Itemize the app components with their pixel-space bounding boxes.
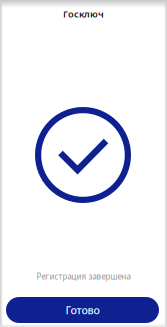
staticText: Госключ [63,8,104,20]
button[interactable]: Готово [6,297,159,323]
staticText: Готово [65,303,99,317]
staticText: Регистрация завершена [36,271,130,282]
